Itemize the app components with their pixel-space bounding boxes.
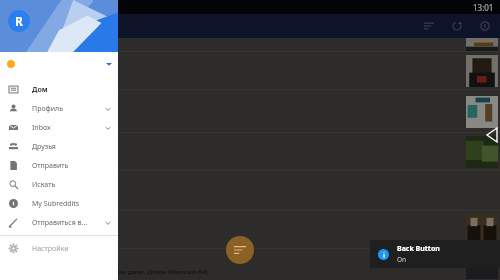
- button[interactable]: Inbox: [0, 118, 118, 137]
- button[interactable]: t tasted very good.: [0, 38, 500, 52]
- staticText: Отправить: [32, 161, 69, 171]
- button[interactable]: Refresh: [450, 19, 464, 33]
- staticText: Друзья: [32, 142, 56, 152]
- button[interactable]: Отправиться в...: [0, 213, 118, 232]
- staticText: Настройки: [32, 244, 69, 254]
- staticText: Дом: [32, 85, 48, 95]
- button[interactable]: Back Button: [370, 240, 500, 268]
- button[interactable]: My Subreddits: [0, 194, 118, 213]
- button[interactable]: Искать: [0, 175, 118, 194]
- button[interactable]: Отправить: [0, 156, 118, 175]
- staticText: ice character during a Battlefield 3 onl…: [2, 268, 208, 276]
- staticText: t tasted very good.: [2, 41, 59, 49]
- button[interactable]: [0, 52, 118, 76]
- button[interactable]: Дом: [0, 80, 118, 99]
- staticText: Back Button: [397, 244, 440, 254]
- button[interactable]: [0, 90, 500, 133]
- button[interactable]: Info: [478, 19, 492, 33]
- staticText: Inbox: [32, 123, 51, 133]
- staticText: Профиль: [32, 104, 63, 114]
- button[interactable]: Настройки: [0, 239, 118, 258]
- button[interactable]: ice character during a Battlefield 3 onl…: [0, 249, 500, 279]
- button[interactable]: helps wins gold medal #19!!: [0, 171, 500, 211]
- staticText: On: [397, 255, 407, 264]
- staticText: Отправиться в...: [32, 218, 88, 228]
- staticText: R: [15, 13, 23, 29]
- button[interactable]: [0, 52, 500, 90]
- staticText: 13:01: [473, 2, 494, 13]
- staticText: Искать: [32, 180, 56, 190]
- button[interactable]: Account avatar: [8, 10, 30, 32]
- button[interactable]: Друзья: [0, 137, 118, 156]
- button[interactable]: [0, 211, 500, 249]
- button[interactable]: Sort posts: [226, 236, 254, 264]
- button[interactable]: ncinnati Harambe': [0, 133, 500, 171]
- staticText: helps wins gold medal #19!!: [2, 200, 85, 208]
- button[interactable]: Профиль: [0, 99, 118, 118]
- button[interactable]: Sort: [422, 19, 436, 33]
- staticText: My Subreddits: [32, 199, 80, 209]
- staticText: ncinnati Harambe': [2, 160, 58, 168]
